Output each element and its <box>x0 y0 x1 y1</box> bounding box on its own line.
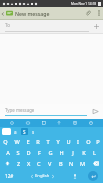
button[interactable]: G <box>45 147 56 158</box>
button[interactable]: 12# <box>0 169 18 183</box>
staticText: Type message <box>5 107 35 113</box>
button[interactable]: H <box>56 147 67 158</box>
button[interactable]: Enter <box>82 169 103 183</box>
staticText: V <box>48 160 52 168</box>
button[interactable]: Space <box>18 169 67 183</box>
button[interactable]: More options <box>94 7 103 19</box>
button[interactable]: O <box>83 136 93 147</box>
button[interactable]: A <box>3 147 13 158</box>
button[interactable]: C <box>34 158 44 169</box>
button[interactable]: Navigate up <box>0 7 14 19</box>
button[interactable]: Backspace <box>88 158 103 169</box>
staticText: I <box>77 138 79 146</box>
staticText: O <box>86 138 91 146</box>
button[interactable]: P <box>93 136 103 147</box>
button[interactable]: L <box>89 147 100 158</box>
button[interactable]: J <box>67 147 78 158</box>
staticText: W <box>14 138 20 146</box>
staticText: Mon Nov 1 14:18 <box>71 2 97 6</box>
staticText: L <box>93 149 96 157</box>
staticText: S <box>16 149 20 157</box>
staticText: G <box>48 149 53 157</box>
staticText: D <box>26 149 31 157</box>
staticText: English <box>35 173 50 179</box>
button[interactable]: s <box>32 129 35 135</box>
staticText: B <box>59 160 63 168</box>
staticText: X <box>27 160 31 168</box>
button[interactable]: Attach <box>82 7 94 19</box>
button[interactable]: K <box>78 147 89 158</box>
button[interactable]: Keyboard tool 4 <box>55 119 63 127</box>
staticText: E <box>26 138 30 146</box>
button[interactable]: R <box>33 136 43 147</box>
staticText: M <box>80 160 86 168</box>
button[interactable]: Type message <box>5 107 87 116</box>
button[interactable]: a <box>14 129 17 135</box>
staticText: Q <box>3 138 8 146</box>
staticText: A <box>6 149 10 157</box>
button[interactable]: Suggestion <box>2 128 11 135</box>
staticText: New message <box>15 10 50 17</box>
staticText: S <box>23 129 26 135</box>
staticText: To <box>5 22 11 28</box>
button[interactable]: S <box>13 147 23 158</box>
button[interactable]: M <box>77 158 88 169</box>
button[interactable]: V <box>44 158 55 169</box>
staticText: K <box>82 149 86 157</box>
button[interactable]: Keyboard tool 5 <box>71 119 79 127</box>
staticText: C <box>37 160 41 168</box>
staticText: T <box>46 138 50 146</box>
button[interactable]: Z <box>14 158 24 169</box>
button[interactable]: Y <box>53 136 63 147</box>
staticText: U <box>66 138 71 146</box>
button[interactable]: N <box>66 158 77 169</box>
button[interactable]: T <box>43 136 53 147</box>
button[interactable]: E <box>22 136 33 147</box>
button[interactable]: X <box>24 158 34 169</box>
staticText: Z <box>17 160 21 168</box>
button[interactable]: Keyboard tool 2 <box>24 119 32 127</box>
button[interactable]: D <box>23 147 34 158</box>
staticText: F <box>38 149 41 157</box>
staticText: Y <box>56 138 60 146</box>
button[interactable]: Keyboard tool 3 <box>40 119 48 127</box>
staticText: H <box>59 149 64 157</box>
button[interactable]: S <box>21 128 28 135</box>
button[interactable]: Keyboard tool 6 <box>87 119 95 127</box>
staticText: P <box>96 138 100 146</box>
staticText: R <box>36 138 40 146</box>
button[interactable]: Voice input <box>67 169 82 183</box>
staticText: N <box>69 160 74 168</box>
button[interactable]: U <box>63 136 73 147</box>
button[interactable]: Send <box>87 104 103 119</box>
button[interactable]: Add recipient <box>89 20 103 33</box>
button[interactable]: W <box>11 136 22 147</box>
staticText: J <box>72 149 74 157</box>
staticText: 12# <box>5 173 14 179</box>
button[interactable]: To <box>0 20 103 33</box>
button[interactable]: F <box>34 147 45 158</box>
button[interactable]: B <box>55 158 66 169</box>
button[interactable]: Q <box>0 136 11 147</box>
button[interactable]: Keyboard tool 1 <box>8 119 16 127</box>
button[interactable]: Shift <box>0 158 14 169</box>
button[interactable]: I <box>73 136 83 147</box>
